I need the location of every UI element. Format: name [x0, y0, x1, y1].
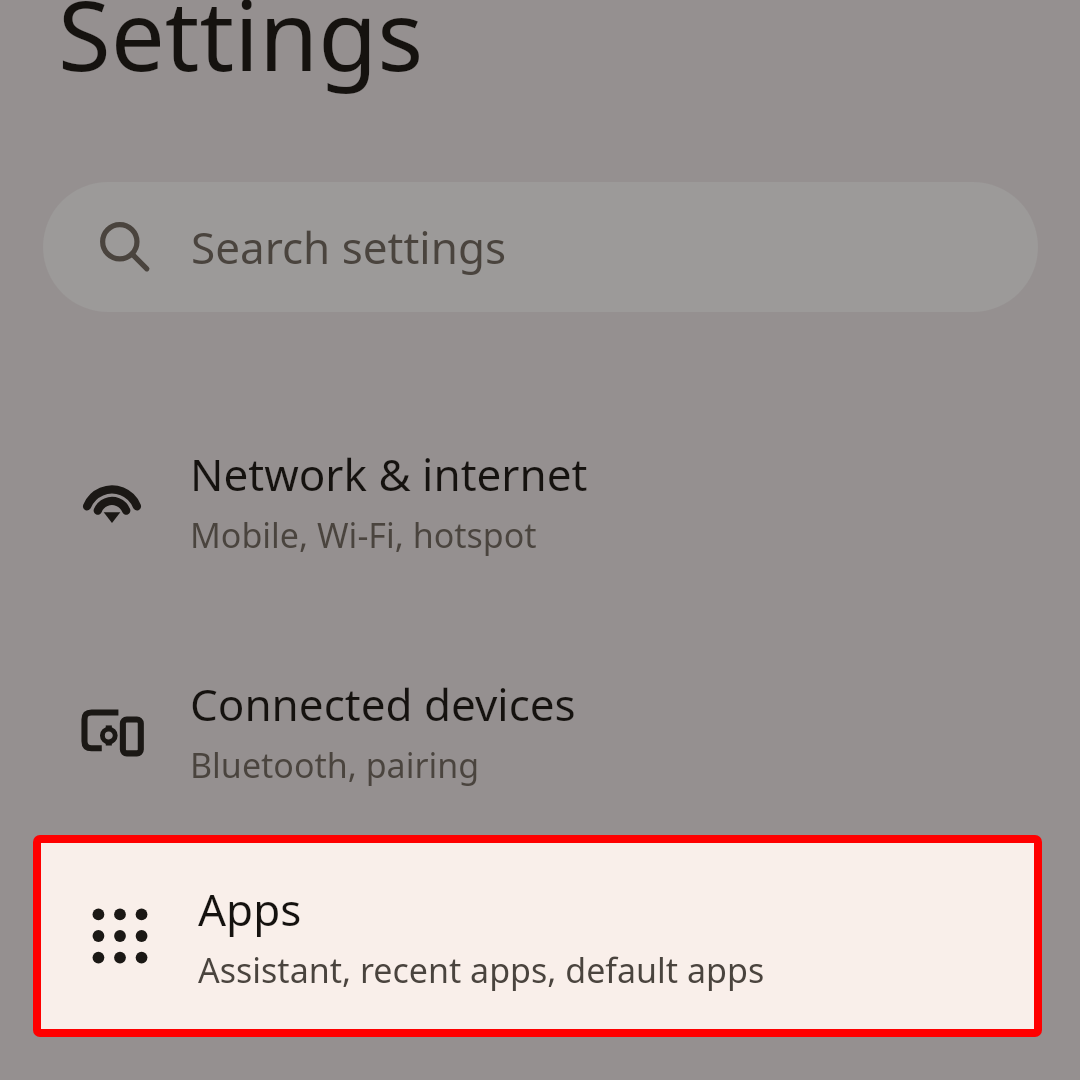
staticText: Settings — [58, 0, 424, 99]
staticText: Mobile, Wi-Fi, hotspot — [190, 512, 537, 558]
staticText: Apps — [198, 879, 302, 939]
staticText: Search settings — [191, 217, 507, 277]
button[interactable]: Connected devices — [33, 630, 1042, 832]
staticText: Assistant, recent apps, default apps — [198, 947, 765, 993]
other: Connected devices — [80, 699, 144, 763]
button[interactable]: Search — [43, 182, 1038, 312]
staticText: Connected devices — [190, 674, 576, 734]
other: Network and internet — [80, 469, 144, 533]
other: Search — [99, 221, 151, 273]
button[interactable]: Network and internet — [33, 400, 1042, 602]
staticText: Network & internet — [190, 444, 588, 504]
button[interactable]: Apps — [41, 843, 1034, 1029]
other: Apps — [92, 908, 148, 964]
staticText: Bluetooth, pairing — [190, 742, 480, 788]
